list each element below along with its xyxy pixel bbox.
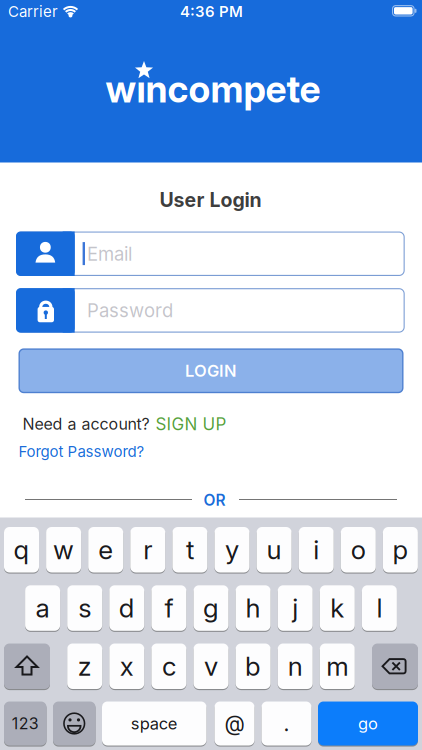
staticText: y: [225, 534, 239, 565]
staticText: x: [120, 650, 134, 682]
staticText: SIGN UP: [155, 414, 226, 434]
staticText: LOGIN: [185, 361, 237, 381]
button[interactable]: i: [299, 527, 334, 572]
staticText: q: [13, 534, 29, 565]
staticText: r: [143, 534, 152, 565]
staticText: space: [131, 713, 178, 733]
staticText: b: [245, 650, 261, 682]
button[interactable]: x: [109, 643, 144, 689]
button[interactable]: e: [88, 527, 123, 572]
button[interactable]: f: [151, 585, 186, 631]
button[interactable]: @: [214, 701, 254, 745]
button[interactable]: Delete: [372, 643, 418, 689]
staticText: go: [358, 713, 378, 733]
button[interactable]: a: [25, 585, 60, 631]
button[interactable]: v: [193, 643, 228, 689]
staticText: Forgot Password?: [18, 442, 144, 460]
staticText: Carrier: [8, 2, 58, 20]
button[interactable]: go: [318, 701, 418, 745]
staticText: .: [283, 711, 289, 736]
staticText: Password: [87, 299, 173, 322]
button[interactable]: k: [320, 585, 355, 631]
button[interactable]: u: [257, 527, 292, 572]
staticText: f: [164, 592, 173, 624]
staticText: 123: [12, 714, 39, 733]
button[interactable]: m: [320, 643, 355, 689]
button[interactable]: z: [67, 643, 102, 689]
button[interactable]: Email: [16, 231, 405, 276]
button[interactable]: 123: [4, 701, 46, 745]
staticText: l: [376, 592, 382, 624]
staticText: m: [326, 650, 348, 682]
staticText: OR: [203, 491, 225, 509]
button[interactable]: SIGN UP: [155, 414, 226, 434]
button[interactable]: l: [362, 585, 397, 631]
staticText: a: [36, 592, 50, 624]
staticText: h: [246, 592, 261, 624]
staticText: j: [292, 592, 298, 624]
staticText: 4:36 PM: [180, 2, 243, 20]
button[interactable]: s: [67, 585, 102, 631]
button[interactable]: Shift: [4, 643, 50, 689]
button[interactable]: o: [341, 527, 376, 572]
staticText: o: [351, 534, 366, 565]
staticText: u: [267, 534, 282, 565]
staticText: w: [53, 534, 74, 565]
button[interactable]: r: [130, 527, 165, 572]
button[interactable]: .: [261, 701, 311, 745]
staticText: n: [288, 650, 303, 682]
staticText: v: [204, 650, 218, 682]
button[interactable]: h: [236, 585, 271, 631]
staticText: d: [119, 592, 135, 624]
staticText: p: [392, 534, 408, 565]
button[interactable]: b: [236, 643, 271, 689]
staticText: c: [162, 650, 176, 682]
button[interactable]: Password: [16, 288, 405, 333]
staticText: z: [78, 650, 92, 682]
button[interactable]: g: [193, 585, 228, 631]
button[interactable]: y: [214, 527, 249, 572]
staticText: g: [203, 592, 219, 624]
staticText: Email: [87, 243, 132, 265]
button[interactable]: c: [151, 643, 186, 689]
button[interactable]: w: [46, 527, 81, 572]
button[interactable]: d: [109, 585, 144, 631]
button[interactable]: n: [278, 643, 313, 689]
button[interactable]: t: [172, 527, 207, 572]
button[interactable]: j: [278, 585, 313, 631]
button[interactable]: LOGIN: [18, 348, 403, 393]
staticText: k: [330, 592, 344, 624]
staticText: Need a account?: [22, 414, 149, 434]
staticText: User Login: [159, 188, 261, 212]
button[interactable]: Forgot Password?: [18, 442, 144, 460]
button[interactable]: p: [383, 527, 418, 572]
staticText: t: [186, 534, 194, 565]
staticText: wıncompete: [105, 67, 320, 111]
button[interactable]: space: [102, 701, 206, 745]
staticText: i: [313, 534, 319, 565]
staticText: s: [78, 592, 91, 624]
staticText: @: [224, 711, 244, 736]
staticText: e: [98, 534, 113, 565]
button[interactable]: Emoji: [53, 701, 95, 745]
button[interactable]: q: [4, 527, 39, 572]
